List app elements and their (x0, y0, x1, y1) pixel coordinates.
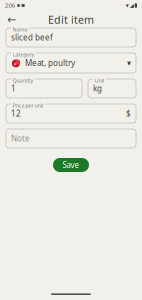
staticText: ← (7, 13, 16, 25)
button[interactable]: Back (4, 11, 20, 27)
staticText: 2:06 (5, 2, 15, 9)
staticText: sliced beef (11, 32, 53, 43)
staticText: Name (12, 26, 27, 33)
staticText: $ (126, 108, 131, 119)
staticText: kg (93, 83, 102, 94)
staticText: Unit (94, 77, 104, 84)
staticText: Note (11, 133, 30, 144)
staticText: Quantity (12, 77, 33, 84)
staticText: Category (12, 51, 34, 58)
staticText: Price per unit (12, 102, 43, 109)
staticText: ▼ (126, 3, 129, 8)
staticText: Save (62, 160, 79, 170)
button[interactable]: Category (6, 53, 136, 73)
staticText: ▾ (127, 58, 131, 68)
staticText: Edit item (48, 12, 94, 27)
staticText: ◢ (130, 2, 134, 9)
staticText: 1 (11, 83, 16, 94)
button[interactable]: Save (53, 158, 89, 172)
staticText: 12 (11, 108, 21, 119)
staticText: Meat, poultry (25, 58, 75, 68)
